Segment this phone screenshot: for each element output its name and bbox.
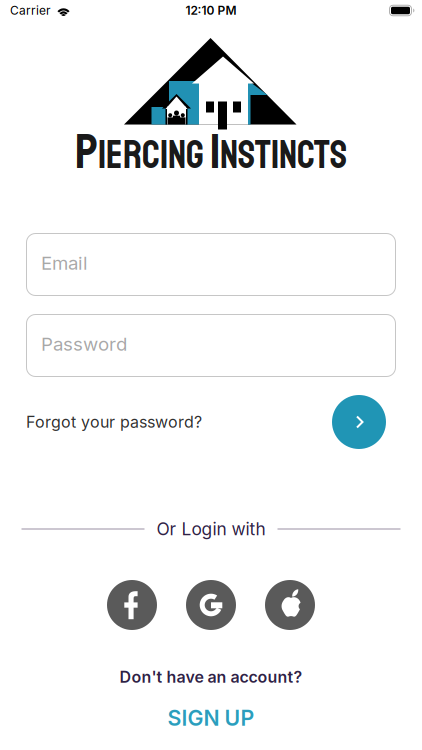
staticText: Don't have an account? (119, 668, 302, 686)
button[interactable]: Forgot your password? (26, 413, 202, 431)
button[interactable]: Log in with Facebook (107, 580, 157, 630)
button[interactable]: Password (26, 314, 396, 377)
button[interactable]: Log in with Google (186, 580, 236, 630)
staticText: SIGN UP (167, 705, 254, 731)
button[interactable]: Email (26, 233, 396, 296)
staticText: Forgot your password? (26, 413, 202, 431)
button[interactable]: Log in with Apple (265, 580, 315, 630)
staticText: 12:10 PM (185, 3, 236, 18)
staticText: Or Login with (156, 519, 265, 539)
button[interactable]: SIGN UP (81, 705, 341, 731)
staticText: PIERCING INSTINCTS (75, 122, 347, 182)
button[interactable]: Log in (332, 395, 386, 449)
staticText: Password (41, 333, 127, 355)
staticText: Carrier (10, 3, 51, 18)
staticText: Email (41, 252, 88, 274)
